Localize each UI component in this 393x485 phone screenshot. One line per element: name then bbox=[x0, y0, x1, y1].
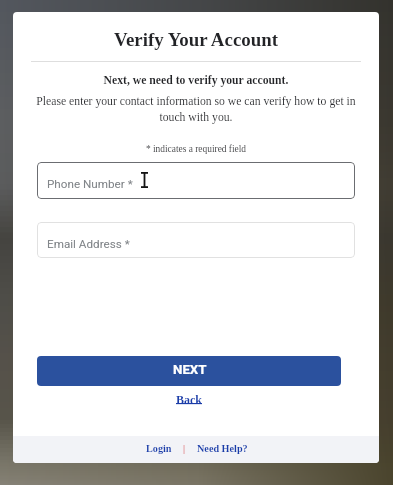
staticText: Please enter your contact information so… bbox=[23, 95, 369, 124]
button[interactable]: Email Address * bbox=[37, 222, 355, 258]
button[interactable]: Back bbox=[176, 393, 203, 406]
staticText: Phone Number * bbox=[47, 177, 133, 191]
staticText: Next, we need to verify your account. bbox=[13, 74, 379, 87]
staticText: Need Help? bbox=[197, 443, 248, 454]
other: Text input cursor bbox=[141, 172, 148, 188]
staticText: * indicates a required field bbox=[13, 144, 379, 154]
button[interactable]: NEXT bbox=[37, 356, 341, 386]
button[interactable]: Phone Number * bbox=[37, 162, 355, 199]
button[interactable]: Login bbox=[146, 443, 172, 454]
staticText: Verify Your Account bbox=[13, 29, 379, 50]
button[interactable]: Need Help? bbox=[197, 443, 248, 454]
staticText: Login bbox=[146, 443, 172, 454]
staticText: | bbox=[183, 443, 186, 454]
staticText: NEXT bbox=[173, 362, 207, 378]
staticText: Email Address * bbox=[47, 237, 130, 251]
staticText: Back bbox=[176, 393, 203, 406]
